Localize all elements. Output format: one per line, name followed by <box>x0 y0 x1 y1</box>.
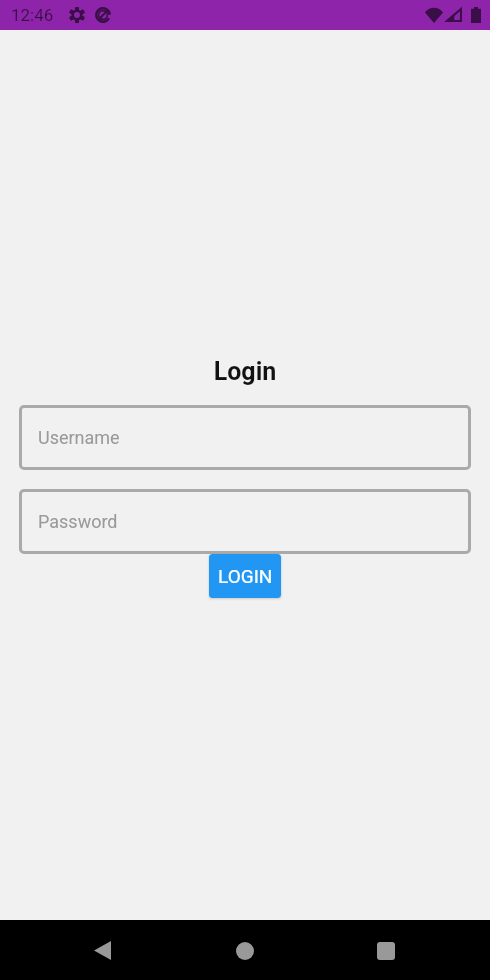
button[interactable]: Recent apps <box>363 928 408 973</box>
staticText: Username <box>38 427 120 448</box>
button[interactable]: LOGIN <box>209 554 281 598</box>
button[interactable]: Back <box>80 928 125 973</box>
staticText: LOGIN <box>218 565 273 587</box>
button[interactable]: Username <box>19 405 471 470</box>
staticText: Password <box>38 511 118 532</box>
staticText: Login <box>0 357 490 386</box>
staticText: 12:46 <box>11 5 54 25</box>
button[interactable]: Password <box>19 489 471 554</box>
button[interactable]: Home <box>222 928 267 973</box>
